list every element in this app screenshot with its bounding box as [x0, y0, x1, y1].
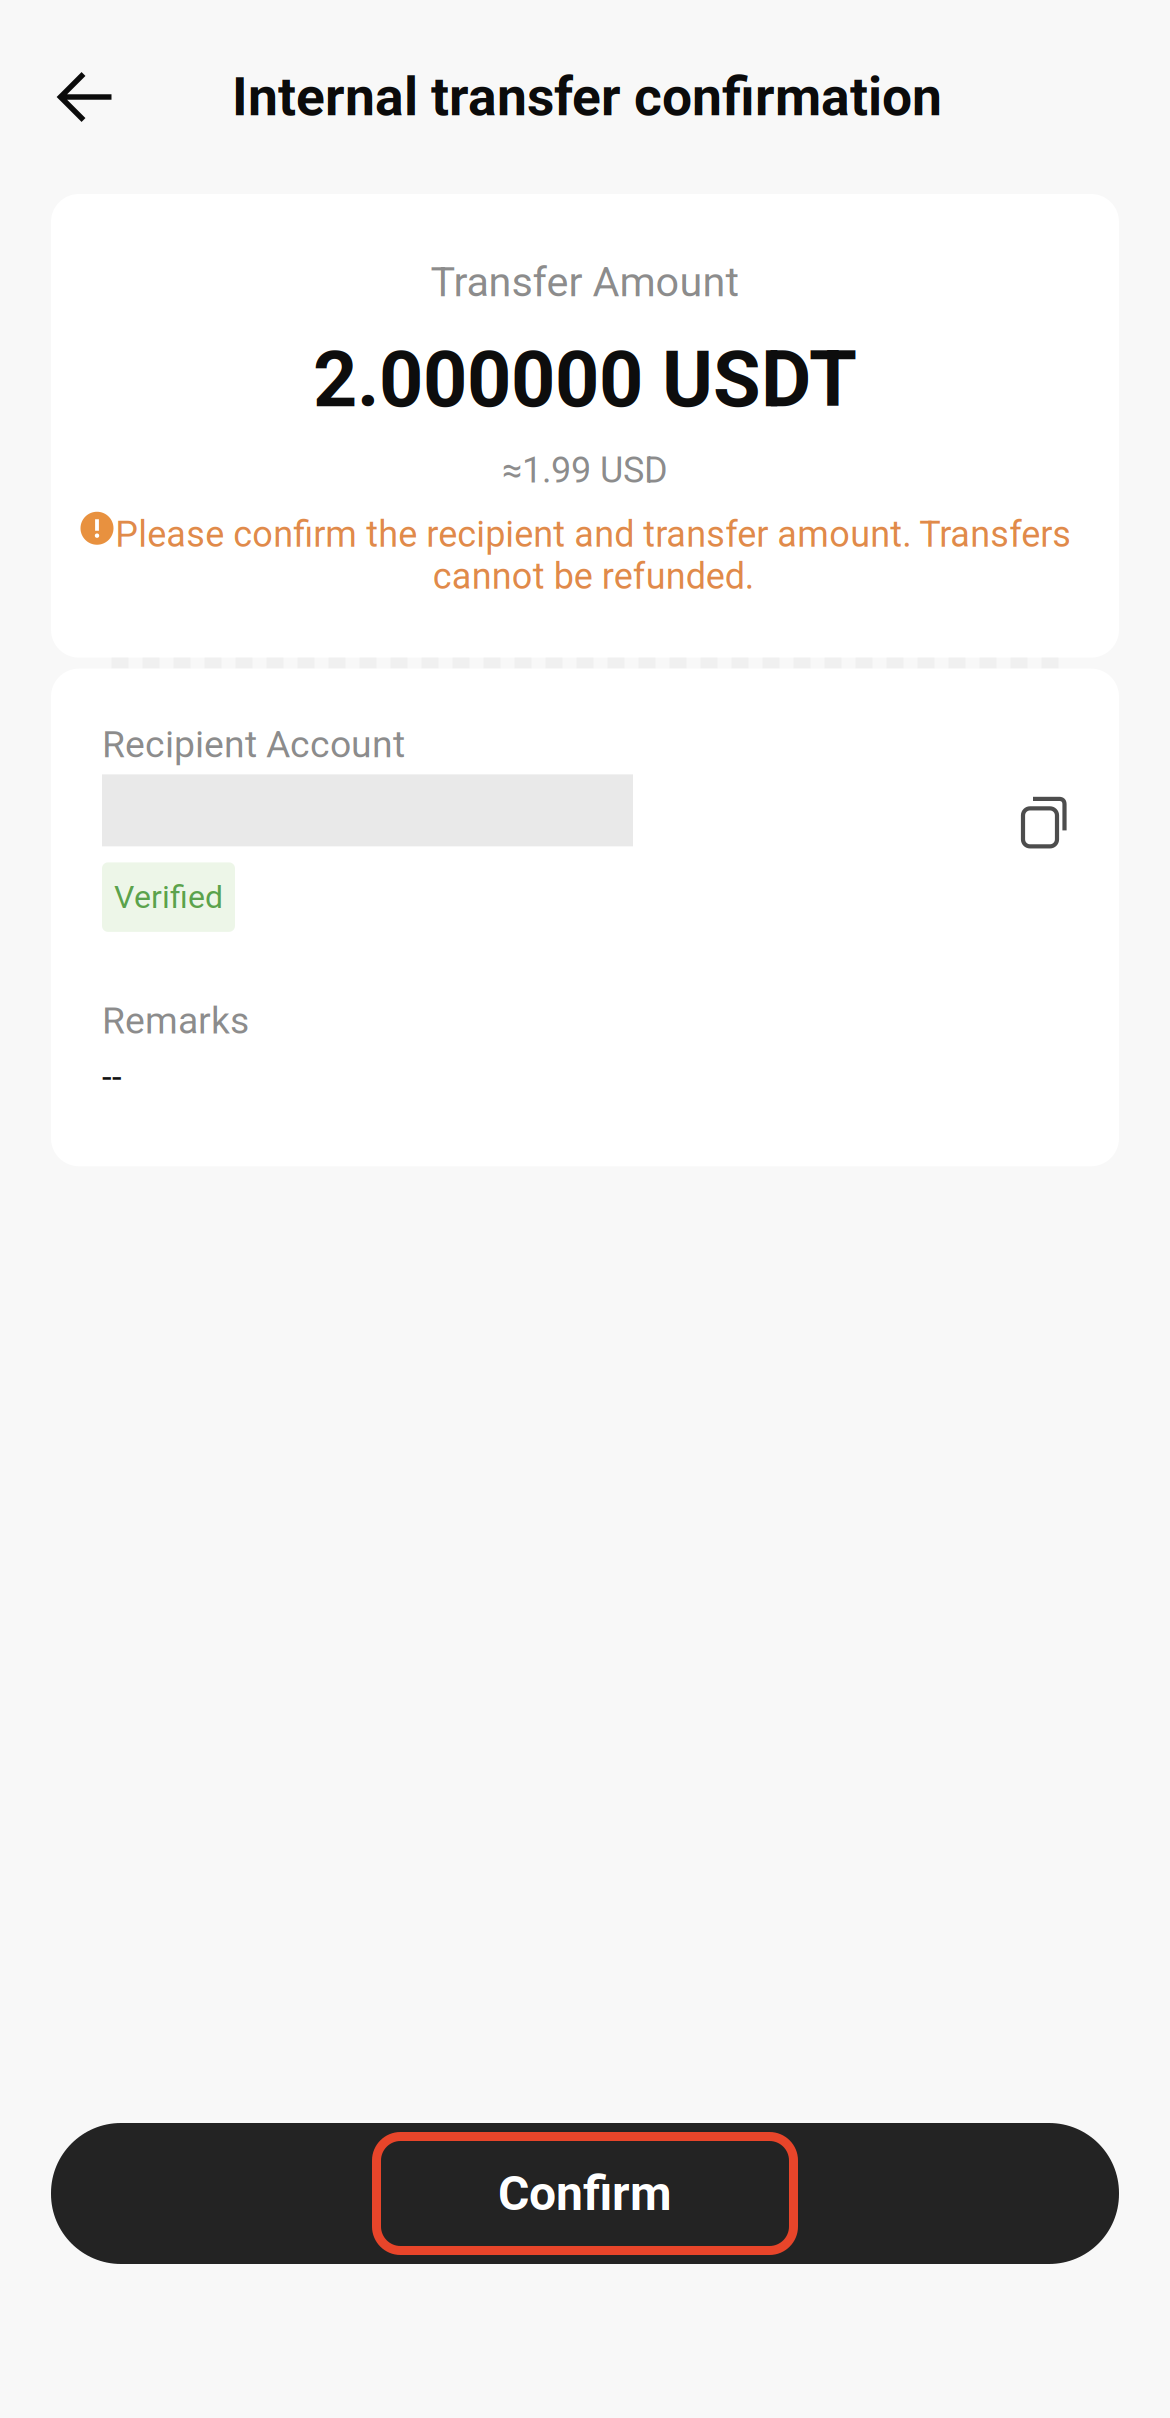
staticText: Transfer Amount [430, 258, 739, 306]
staticText: Recipient Account [102, 723, 405, 766]
button[interactable]: Copy recipient account [1023, 785, 1068, 835]
staticText: Verified [114, 878, 223, 916]
button[interactable]: Confirm [51, 2123, 1119, 2264]
staticText: Please confirm the recipient and transfe… [115, 513, 1071, 598]
staticText: ≈1.99 USD [502, 449, 668, 491]
staticText: Remarks [102, 999, 249, 1043]
staticText: 2.000000 USDT [313, 334, 857, 425]
staticText: Confirm [498, 2165, 672, 2222]
staticText: Internal transfer confirmation [232, 66, 942, 128]
button[interactable]: Back [0, 37, 110, 157]
staticText: -- [102, 1057, 122, 1097]
